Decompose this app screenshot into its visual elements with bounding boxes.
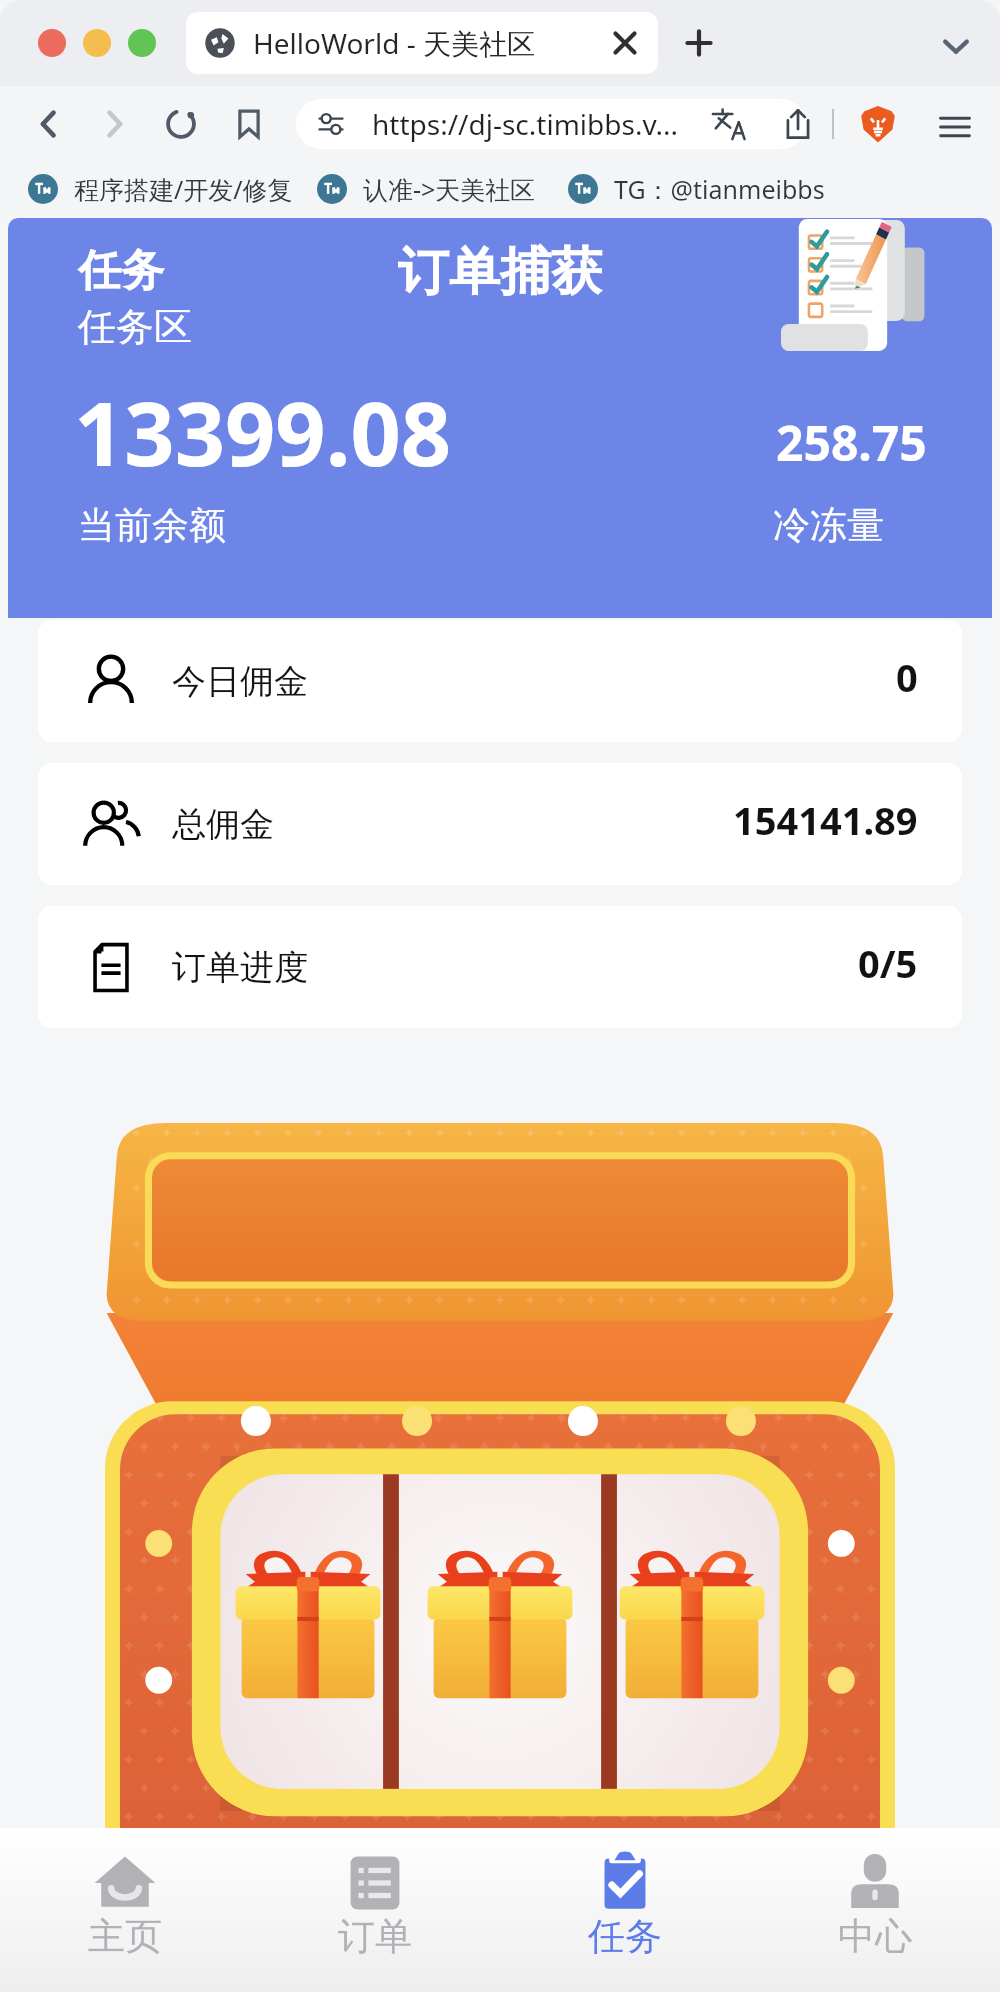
staticText: 0 <box>896 651 918 703</box>
button[interactable]: https://dj-sc.timibbs.v... <box>296 99 806 149</box>
button[interactable]: Back <box>30 105 68 143</box>
button[interactable]: Maximize window <box>128 29 156 57</box>
button[interactable]: 总佣金 <box>38 763 962 885</box>
button[interactable]: Minimize window <box>83 29 111 57</box>
staticText: 任务区 <box>78 303 192 351</box>
button[interactable]: 程序搭建/开发/修复 <box>22 160 299 218</box>
button[interactable]: 订单进度 <box>38 906 962 1028</box>
button[interactable]: 订单 <box>250 1828 500 1992</box>
staticText: 订单捕获 <box>398 240 602 304</box>
staticText: 认准->天美社区 <box>363 172 536 206</box>
button[interactable]: Close window <box>38 29 66 57</box>
button[interactable]: 今日佣金 <box>38 620 962 742</box>
button[interactable]: Brave Shields <box>858 104 898 144</box>
staticText: 今日佣金 <box>172 660 308 703</box>
staticText: 总佣金 <box>172 803 274 846</box>
button[interactable]: 认准->天美社区 <box>311 160 542 218</box>
button[interactable]: Close tab <box>608 26 642 60</box>
button[interactable]: Bookmark <box>230 105 268 143</box>
button[interactable]: Reload <box>162 105 200 143</box>
staticText: 订单进度 <box>172 946 308 989</box>
staticText: 程序搭建/开发/修复 <box>74 172 293 206</box>
button[interactable]: 主页 <box>0 1828 250 1992</box>
button[interactable]: HelloWorld - 天美社区timibbs.n <box>186 12 658 74</box>
button[interactable]: 中心 <box>750 1828 1000 1992</box>
staticText: 中心 <box>838 1913 912 1960</box>
staticText: 任务 <box>78 244 164 298</box>
staticText: 13399.08 <box>74 372 452 492</box>
button[interactable]: Share <box>780 106 816 142</box>
button[interactable]: Translate page <box>710 106 746 142</box>
staticText: 258.75 <box>776 410 927 475</box>
staticText: TG：@tianmeibbs <box>614 172 825 206</box>
staticText: 冷冻量 <box>773 502 884 549</box>
staticText: 任务 <box>588 1913 662 1960</box>
staticText: 0/5 <box>858 937 918 989</box>
staticText: https://dj-sc.timibbs.v... <box>372 105 679 143</box>
staticText: 当前余额 <box>78 502 226 549</box>
staticText: HelloWorld - 天美社区timibbs.n <box>253 24 594 62</box>
staticText: 154141.89 <box>733 794 918 846</box>
button[interactable]: Menu <box>936 108 974 146</box>
staticText: 主页 <box>88 1913 162 1960</box>
button[interactable]: Tab search <box>938 28 974 64</box>
staticText: 订单 <box>338 1913 412 1960</box>
button[interactable]: TG：@tianmeibbs <box>562 160 831 218</box>
button[interactable]: Forward <box>95 105 133 143</box>
button[interactable]: 任务 <box>500 1828 750 1992</box>
button[interactable]: New tab <box>682 26 716 60</box>
